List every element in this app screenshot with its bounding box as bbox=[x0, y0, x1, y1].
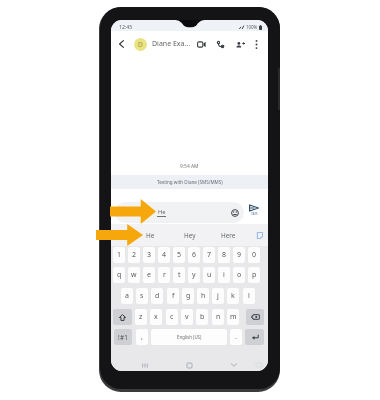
staticText: a bbox=[125, 291, 129, 301]
button[interactable]: Add person bbox=[234, 38, 247, 51]
staticText: k bbox=[231, 291, 235, 301]
button[interactable]: 9 bbox=[233, 247, 245, 263]
staticText: j bbox=[217, 291, 219, 301]
button[interactable]: Backspace bbox=[246, 309, 264, 325]
button[interactable]: h bbox=[197, 288, 209, 304]
button[interactable]: Here bbox=[209, 224, 248, 246]
button[interactable]: q bbox=[113, 267, 125, 283]
staticText: He bbox=[146, 231, 155, 240]
staticText: o bbox=[237, 270, 242, 280]
staticText: 5 bbox=[177, 250, 182, 260]
staticText: 4 bbox=[162, 250, 167, 260]
button[interactable]: m bbox=[227, 309, 239, 325]
button[interactable]: b bbox=[196, 309, 208, 325]
staticText: p bbox=[252, 270, 257, 280]
button[interactable]: z bbox=[135, 309, 147, 325]
button[interactable]: y bbox=[188, 267, 200, 283]
button[interactable]: c bbox=[166, 309, 178, 325]
button[interactable]: Recents bbox=[139, 359, 151, 371]
button[interactable]: k bbox=[227, 288, 239, 304]
button[interactable]: 0 bbox=[248, 247, 260, 263]
staticText: 6 bbox=[192, 250, 197, 260]
staticText: z bbox=[139, 312, 143, 322]
button[interactable]: 2 bbox=[128, 247, 140, 263]
staticText: . bbox=[235, 332, 237, 342]
staticText: d bbox=[155, 291, 160, 301]
staticText: 0 bbox=[252, 250, 257, 260]
button[interactable]: Stickers bbox=[252, 224, 266, 246]
button[interactable]: Keyboard bbox=[253, 359, 265, 371]
button[interactable]: Call bbox=[214, 38, 227, 51]
staticText: 2 bbox=[132, 250, 137, 260]
button[interactable]: j bbox=[212, 288, 224, 304]
button[interactable]: Enter bbox=[245, 329, 264, 345]
staticText: , bbox=[141, 332, 143, 342]
button[interactable]: s bbox=[136, 288, 148, 304]
button[interactable]: e bbox=[143, 267, 155, 283]
button[interactable]: u bbox=[203, 267, 215, 283]
button[interactable]: Send SMS bbox=[247, 204, 261, 220]
button[interactable]: . bbox=[230, 329, 242, 345]
staticText: English (US) bbox=[177, 334, 202, 340]
button[interactable]: More options bbox=[251, 39, 261, 49]
staticText: 100% bbox=[246, 24, 258, 30]
button[interactable]: f bbox=[167, 288, 179, 304]
staticText: l bbox=[248, 291, 250, 301]
button[interactable]: , bbox=[136, 329, 148, 345]
button[interactable]: 4 bbox=[158, 247, 170, 263]
staticText: q bbox=[117, 270, 122, 280]
button[interactable]: Home bbox=[183, 359, 195, 371]
staticText: 8 bbox=[222, 250, 227, 260]
button[interactable]: r bbox=[158, 267, 170, 283]
staticText: He bbox=[158, 208, 166, 216]
button[interactable]: l bbox=[243, 288, 255, 304]
button[interactable]: !#1 bbox=[114, 329, 132, 345]
button[interactable]: He bbox=[131, 224, 170, 246]
button[interactable]: English (US) bbox=[151, 329, 227, 345]
button[interactable]: d bbox=[151, 288, 163, 304]
staticText: 12:45 bbox=[119, 23, 133, 30]
staticText: b bbox=[200, 312, 205, 322]
button[interactable]: o bbox=[233, 267, 245, 283]
button[interactable]: Back bbox=[228, 359, 240, 371]
button[interactable]: He bbox=[115, 202, 244, 223]
button[interactable]: Video call bbox=[195, 38, 208, 51]
button[interactable]: w bbox=[128, 267, 140, 283]
staticText: !#1 bbox=[118, 333, 129, 342]
button[interactable]: Hey bbox=[170, 224, 209, 246]
button[interactable]: 7 bbox=[203, 247, 215, 263]
button[interactable]: n bbox=[212, 309, 224, 325]
staticText: e bbox=[147, 270, 151, 280]
staticText: m bbox=[230, 312, 237, 322]
button[interactable]: a bbox=[121, 288, 133, 304]
button[interactable]: x bbox=[150, 309, 162, 325]
staticText: x bbox=[154, 312, 158, 322]
staticText: D bbox=[138, 40, 143, 49]
button[interactable]: i bbox=[218, 267, 230, 283]
button[interactable]: 1 bbox=[113, 247, 125, 263]
button[interactable]: Emoji bbox=[230, 208, 240, 218]
button[interactable]: g bbox=[182, 288, 194, 304]
button[interactable]: t bbox=[173, 267, 185, 283]
staticText: c bbox=[170, 312, 174, 322]
button[interactable]: 3 bbox=[143, 247, 155, 263]
staticText: v bbox=[185, 312, 189, 322]
button[interactable]: 5 bbox=[173, 247, 185, 263]
staticText: Hey bbox=[184, 231, 196, 240]
button[interactable]: Shift bbox=[113, 309, 132, 325]
staticText: n bbox=[216, 312, 221, 322]
staticText: t bbox=[178, 270, 181, 280]
button[interactable]: 8 bbox=[218, 247, 230, 263]
staticText: g bbox=[186, 291, 191, 301]
staticText: Diane Exa... bbox=[152, 39, 191, 49]
staticText: 9 bbox=[237, 250, 242, 260]
staticText: Texting with Diane (SMS/MMS) bbox=[157, 179, 223, 185]
staticText: 7 bbox=[207, 250, 212, 260]
staticText: h bbox=[201, 291, 206, 301]
button[interactable]: 6 bbox=[188, 247, 200, 263]
button[interactable]: v bbox=[181, 309, 193, 325]
button[interactable]: Back bbox=[115, 38, 127, 50]
staticText: w bbox=[131, 270, 137, 280]
button[interactable]: p bbox=[248, 267, 260, 283]
staticText: 9:54 AM bbox=[180, 163, 199, 169]
